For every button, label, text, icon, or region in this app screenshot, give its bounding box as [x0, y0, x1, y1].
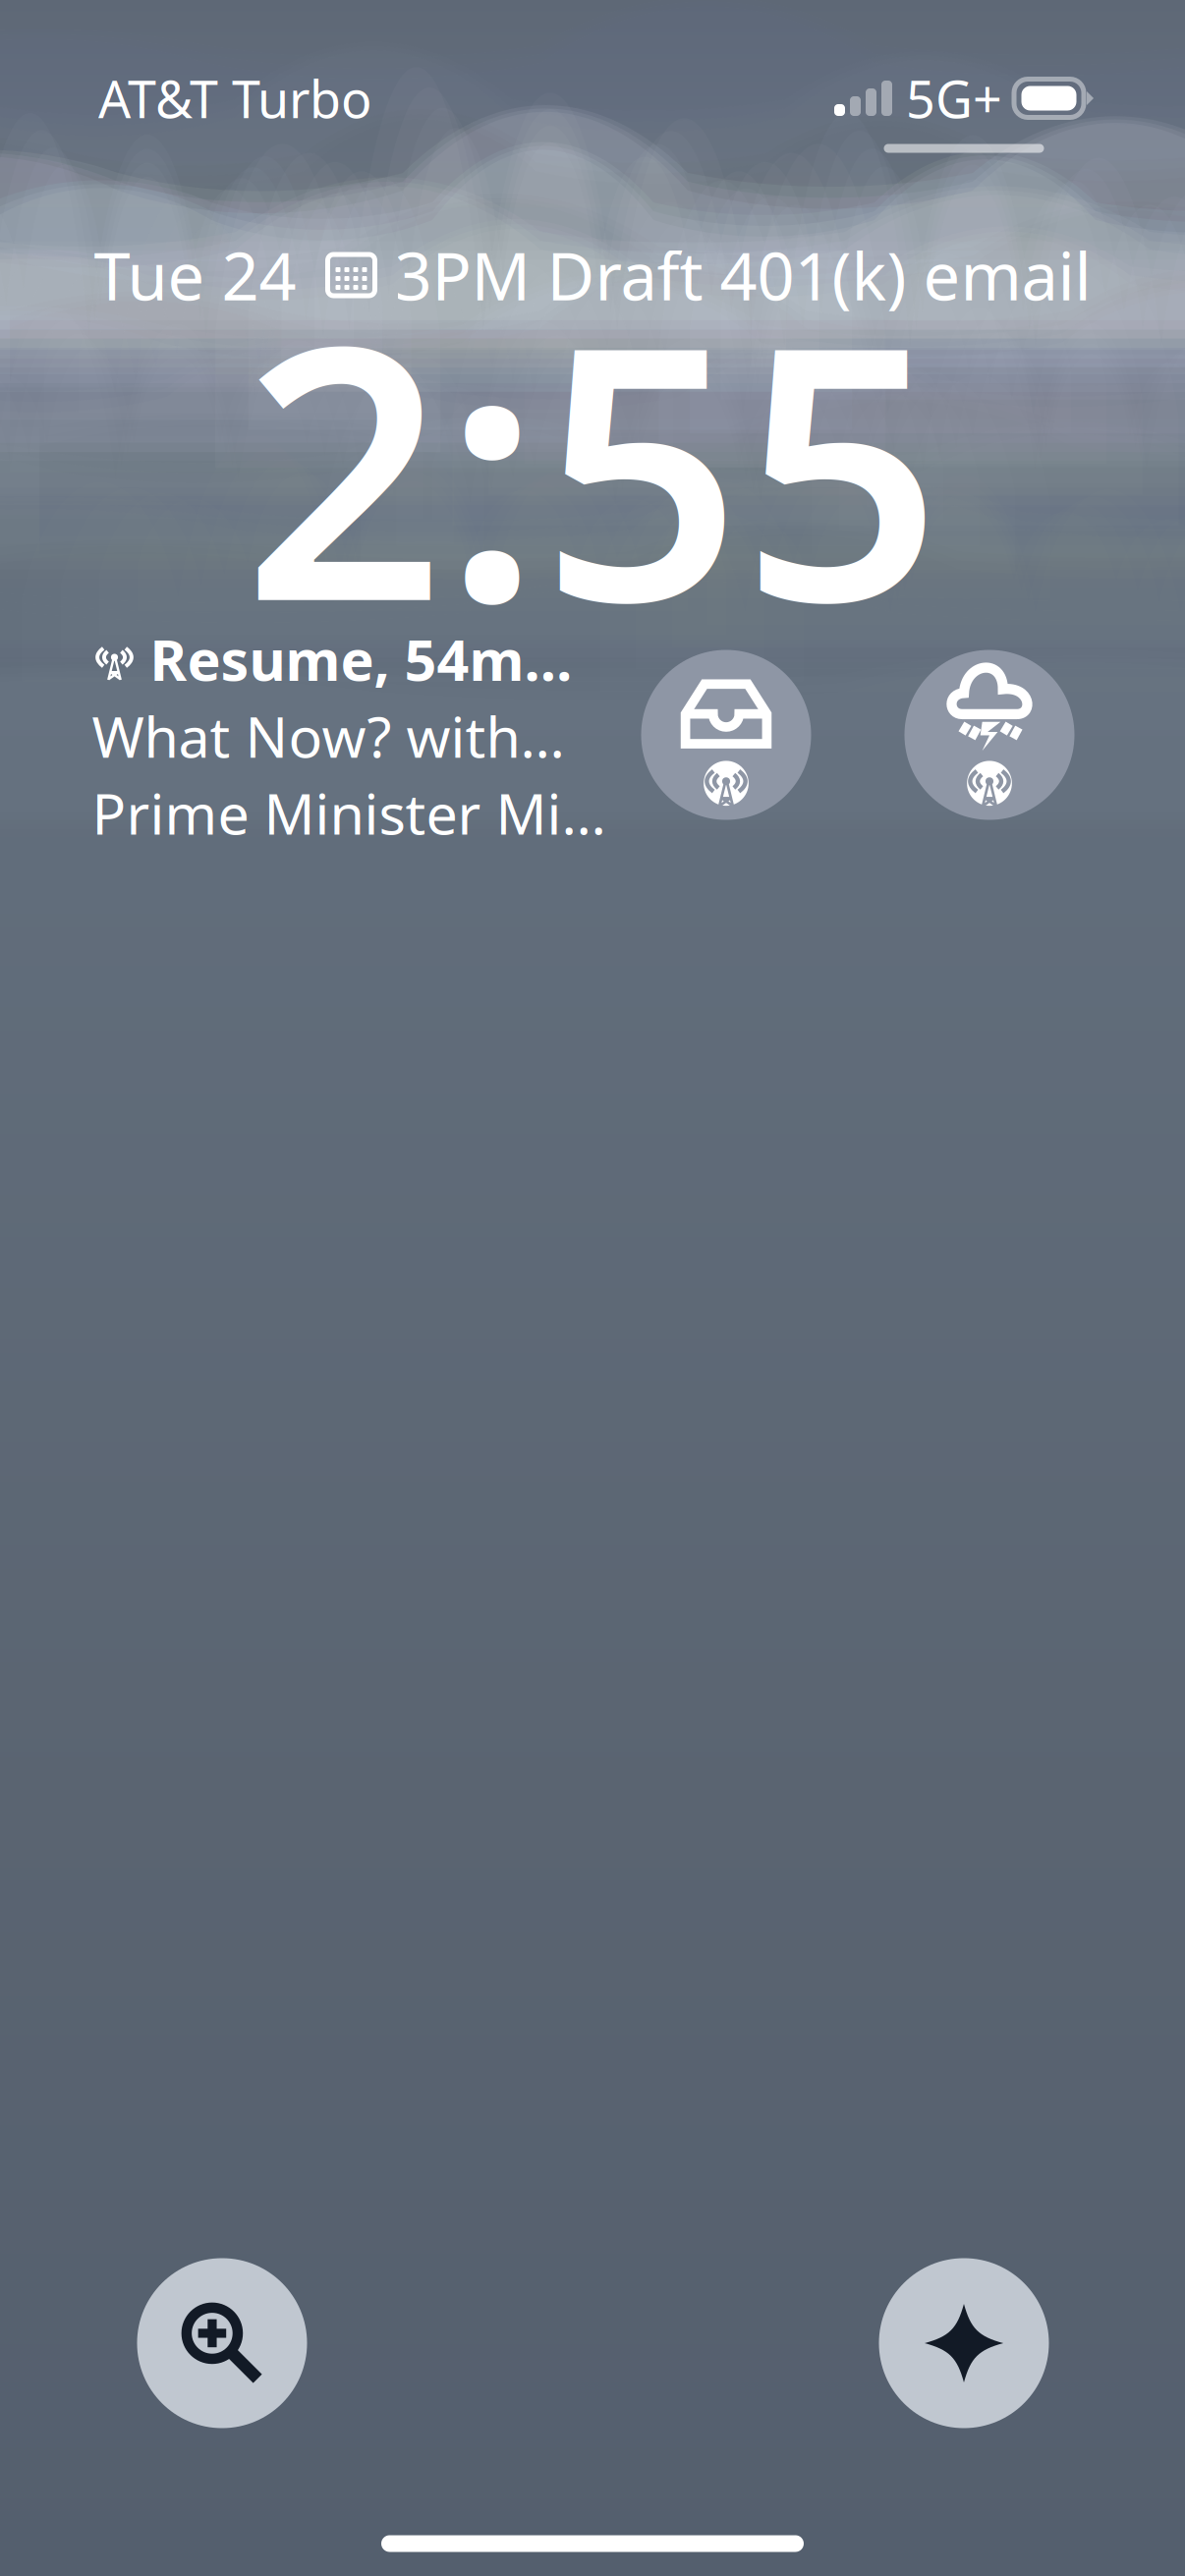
button[interactable]: Image Playground — [879, 2258, 1049, 2428]
staticText: Tue 24 — [94, 232, 296, 319]
button[interactable]: Weather — [904, 650, 1074, 820]
button[interactable]: Magnifier — [137, 2258, 307, 2428]
staticText: 2:55 — [243, 231, 942, 697]
staticText: 5G+ — [906, 64, 1002, 132]
staticText: Resume, 54m… — [150, 622, 572, 696]
staticText: AT&T Turbo — [98, 64, 371, 132]
staticText: What Now? with… — [92, 698, 564, 773]
button[interactable]: Mail — [641, 650, 811, 820]
staticText: Prime Minister Mi… — [92, 775, 606, 850]
staticText: 3PM Draft 401(k) email — [395, 232, 1091, 319]
button[interactable]: Podcasts, Resume, 54 minutes — [92, 622, 606, 850]
